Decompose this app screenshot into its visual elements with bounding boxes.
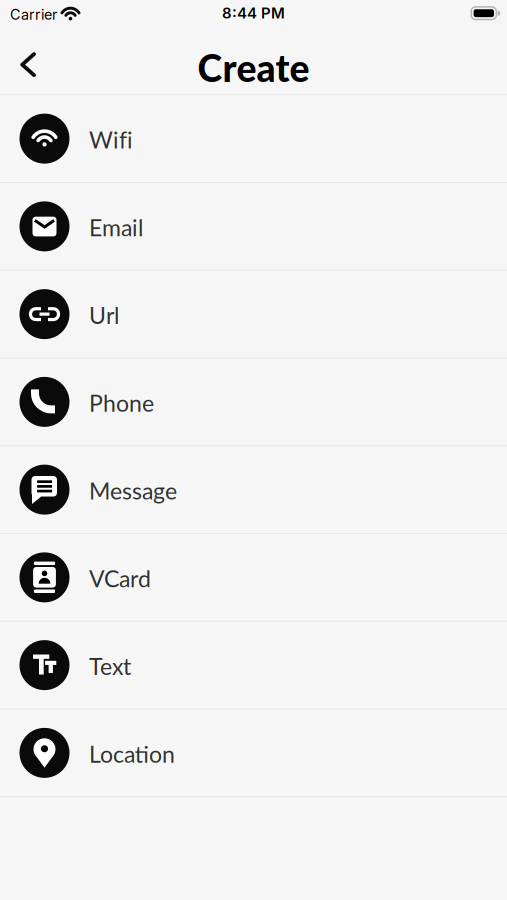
staticText: Text (89, 652, 131, 680)
staticText: 8:44 PM (222, 4, 285, 22)
staticText: Url (89, 301, 119, 329)
staticText: Email (89, 213, 143, 241)
staticText: VCard (89, 564, 151, 592)
button[interactable]: Back (0, 41, 36, 82)
button[interactable]: Url (0, 271, 507, 359)
staticText: Message (89, 477, 177, 504)
staticText: Location (89, 740, 175, 768)
staticText: i (127, 126, 133, 153)
button[interactable]: Text (0, 622, 507, 710)
button[interactable]: Phone (0, 358, 507, 446)
staticText: Wif (89, 126, 127, 153)
staticText: Create (197, 45, 309, 90)
button[interactable]: Location (0, 709, 507, 797)
button[interactable]: Email (0, 183, 507, 271)
button[interactable]: Wif (0, 95, 507, 183)
button[interactable]: Message (0, 446, 507, 534)
button[interactable]: VCard (0, 534, 507, 622)
staticText: Carrier (10, 6, 57, 23)
staticText: Phone (89, 389, 154, 417)
